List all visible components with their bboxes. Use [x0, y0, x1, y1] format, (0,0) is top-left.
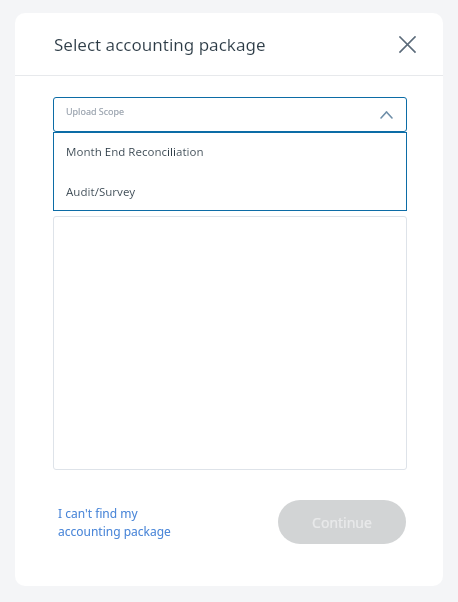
button[interactable]: Upload Scope	[53, 97, 407, 132]
button[interactable]: Audit/Survey	[53, 172, 407, 211]
staticText: Audit/Survey	[66, 184, 136, 200]
button[interactable]: Continue	[278, 500, 406, 544]
staticText: I can't find my accounting package	[58, 505, 171, 540]
button[interactable]: I can't find my accounting package	[58, 503, 190, 542]
staticText: Month End Reconciliation	[66, 144, 204, 160]
staticText: Upload Scope	[66, 105, 125, 117]
button[interactable]: Close	[392, 29, 422, 59]
button[interactable]: Month End Reconciliation	[53, 132, 407, 172]
staticText: Select accounting package	[54, 33, 266, 56]
staticText: Continue	[312, 513, 372, 532]
